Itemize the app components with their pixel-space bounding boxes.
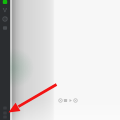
button[interactable]: Commit xyxy=(0,15,10,23)
button[interactable]: Settings xyxy=(72,97,78,103)
button[interactable]: Project xyxy=(0,6,10,14)
button[interactable]: Emulator xyxy=(67,97,73,103)
button[interactable]: Structure xyxy=(0,24,10,32)
button[interactable]: Problems xyxy=(0,113,10,120)
button[interactable]: Device xyxy=(62,97,68,103)
button[interactable]: Android xyxy=(0,0,10,6)
button[interactable]: Terminal xyxy=(0,104,10,112)
button[interactable]: Build xyxy=(0,109,10,117)
button[interactable]: Run xyxy=(57,97,63,103)
